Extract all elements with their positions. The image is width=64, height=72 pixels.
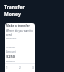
staticText: Balance [6, 59, 15, 62]
staticText: Transfer [4, 4, 25, 11]
staticText: 2 [19, 66, 21, 70]
staticText: Recipient [6, 36, 17, 39]
staticText: Amount [6, 50, 16, 54]
staticText: Make a transfer [6, 24, 30, 28]
staticText: 3 [32, 66, 34, 70]
staticText: $250 [6, 54, 16, 59]
staticText: Money [4, 11, 21, 18]
staticText: Account [6, 45, 16, 48]
staticText: Where do you want to send [6, 29, 35, 37]
staticText: 1 [6, 66, 8, 70]
